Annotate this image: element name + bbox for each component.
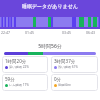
staticText: 1時間20分 — [5, 58, 27, 64]
button[interactable]: 0分 — [51, 74, 98, 91]
button[interactable]: 59分 — [2, 74, 48, 91]
staticText: 0分 — [54, 76, 62, 82]
staticText: 3時間37分 — [54, 58, 76, 64]
staticText: 5時間56分 — [0, 43, 100, 50]
staticText: 覚醒時間 — [58, 83, 71, 87]
staticText: 浅い睡眠 61% — [58, 65, 78, 69]
staticText: 03:45 — [62, 30, 71, 35]
staticText: 22:47 — [1, 30, 10, 35]
staticText: 59分 — [5, 76, 15, 82]
button[interactable]: 1時間20分 — [2, 56, 48, 73]
staticText: レム睡眠 17% — [9, 83, 30, 87]
staticText: 深い睡眠 22% — [9, 65, 29, 69]
staticText: 睡眠データがありません — [22, 3, 78, 9]
staticText: 01:45 — [25, 30, 34, 35]
staticText: 06:43 — [86, 30, 95, 35]
button[interactable]: 3時間37分 — [51, 56, 98, 73]
